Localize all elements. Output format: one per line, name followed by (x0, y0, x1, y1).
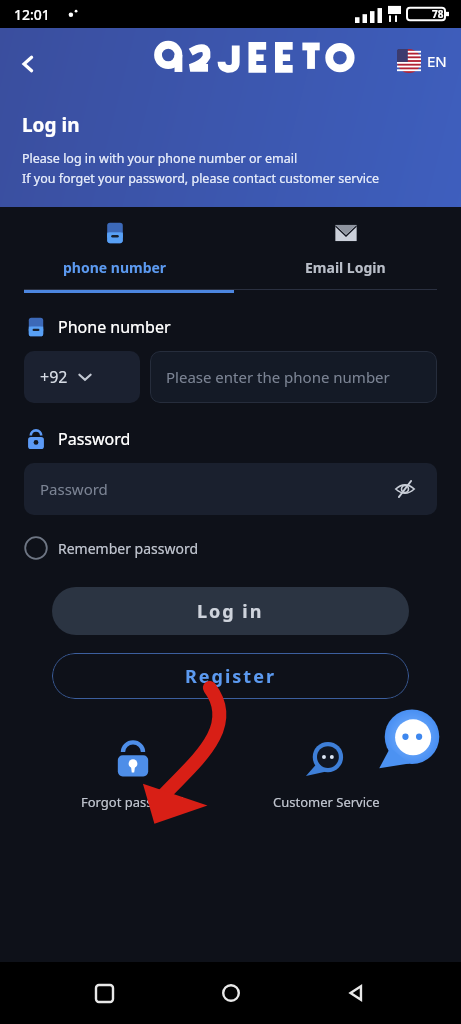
staticText: Phone number (58, 316, 171, 338)
staticText: Log in (22, 112, 80, 138)
button[interactable]: Back (6, 42, 50, 86)
button[interactable]: Password (24, 463, 437, 515)
staticText: 12:01 (14, 5, 50, 24)
staticText: EN (427, 51, 447, 71)
staticText: Register (185, 664, 276, 689)
staticText: Customer Service (273, 793, 380, 811)
button[interactable]: Customer Service (265, 727, 388, 819)
staticText: Password (40, 479, 108, 499)
button[interactable]: Log in (52, 587, 409, 635)
button[interactable]: Please enter the phone number (150, 351, 437, 403)
button[interactable]: EN (393, 46, 451, 76)
button[interactable]: Register (52, 653, 409, 699)
staticText: If you forget your password, please cont… (22, 170, 380, 187)
staticText: phone number (63, 258, 167, 277)
staticText: Remember password (58, 539, 199, 558)
staticText: 78 (432, 7, 444, 21)
staticText: Forgot password (81, 793, 184, 811)
staticText: +92 (40, 366, 68, 388)
button[interactable]: Show password (389, 473, 421, 505)
button[interactable]: Email Login (230, 207, 461, 289)
button[interactable]: Recents (82, 971, 126, 1015)
button[interactable]: Home (209, 971, 253, 1015)
staticText: Please log in with your phone number or … (22, 150, 298, 167)
button[interactable]: +92 (24, 351, 140, 403)
button[interactable]: Back (335, 971, 379, 1015)
button[interactable]: Forgot password (73, 727, 192, 819)
staticText: Password (58, 428, 131, 450)
button[interactable]: Remember password (24, 531, 461, 565)
staticText: Please enter the phone number (166, 367, 390, 387)
staticText: Email Login (305, 258, 386, 277)
button[interactable]: phone number (0, 207, 230, 289)
staticText: Log in (197, 599, 264, 624)
